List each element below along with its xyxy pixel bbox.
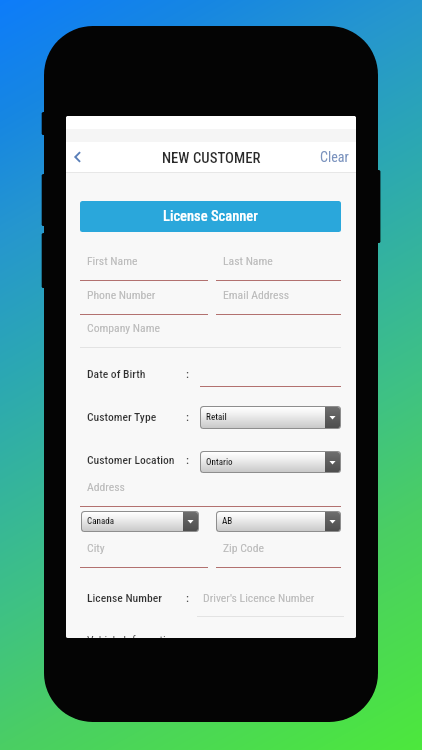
button[interactable]: Customer Location [80,451,186,469]
staticText: AB [222,516,233,527]
button[interactable]: Back [66,142,93,172]
button[interactable]: Zip Code [216,538,341,568]
staticText: Canada [87,516,115,527]
staticText: City [87,541,105,555]
staticText: Phone Number [87,288,156,302]
staticText: Retail [206,412,227,423]
staticText: Clear [320,149,349,165]
button[interactable]: License Scanner [80,201,341,232]
staticText: Customer Location [87,453,175,467]
button[interactable]: Date of Birth [80,365,186,383]
button[interactable]: AB [217,512,340,531]
staticText: Date of Birth [87,367,146,381]
staticText: : [186,367,189,381]
staticText: Company Name [87,321,160,335]
button[interactable]: Phone Number [80,285,208,315]
staticText: Address [87,480,125,494]
button[interactable]: Address [80,477,341,507]
staticText: Vehicle Information [87,633,178,638]
staticText: NEW CUSTOMER [162,149,261,166]
staticText: : [186,410,189,424]
staticText: Driver's Licence Number [203,591,315,605]
button[interactable]: First Name [80,251,208,281]
button[interactable]: Ontario [201,452,340,472]
staticText: Customer Type [87,410,157,424]
button[interactable]: Last Name [216,251,341,281]
staticText: : [186,591,189,605]
staticText: Last Name [223,254,273,268]
button[interactable]: Company Name [80,318,341,348]
staticText: License Scanner [163,208,258,225]
button[interactable]: City [80,538,208,568]
button[interactable]: Retail [201,407,340,428]
staticText: License Number [87,591,162,605]
staticText: Email Address [223,288,290,302]
button[interactable]: License Number [80,589,186,607]
button[interactable]: Email Address [216,285,341,315]
button[interactable]: Clear [320,149,349,165]
staticText: First Name [87,254,138,268]
button[interactable]: Customer Type [80,408,186,426]
staticText: Zip Code [223,541,265,555]
staticText: : [186,453,189,467]
staticText: Ontario [206,457,233,468]
button[interactable]: Canada [82,512,198,531]
